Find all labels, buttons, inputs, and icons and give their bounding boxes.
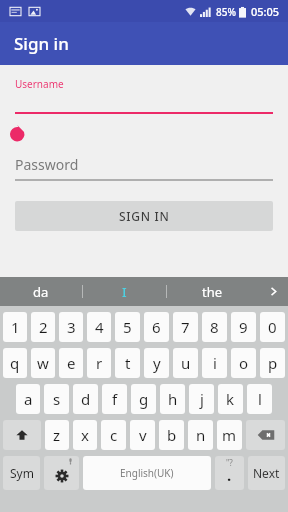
staticText: v [139,425,147,445]
button[interactable]: n [188,420,213,450]
button[interactable]: d [73,384,98,414]
staticText: 9 [239,317,248,337]
button[interactable]: Username [15,77,273,125]
staticText: 5 [123,317,132,337]
staticText: 6 [152,317,161,337]
staticText: r [96,353,103,373]
staticText: 05:05 [251,4,280,19]
button[interactable]: More suggestions [258,277,288,306]
button[interactable]: da [0,277,82,306]
button[interactable]: y [144,348,169,378]
button[interactable]: SIGN IN [15,201,273,231]
button[interactable]: c [101,420,126,450]
button[interactable]: Shift [3,420,41,450]
button[interactable]: v [130,420,155,450]
button[interactable]: a [16,384,40,414]
button[interactable]: Sym [3,456,40,490]
staticText: q [10,353,20,373]
button[interactable]: t [115,348,140,378]
staticText: f [112,389,118,409]
staticText: j [200,389,204,409]
button[interactable]: b [159,420,184,450]
button[interactable]: q [3,348,27,378]
staticText: k [226,389,235,409]
button[interactable]: h [160,384,185,414]
staticText: 8 [210,317,219,337]
staticText: n [196,425,206,445]
staticText: x [81,425,89,445]
button[interactable]: z [45,420,69,450]
button[interactable]: Password [15,147,273,181]
staticText: Username [15,77,64,91]
staticText: 4 [95,317,104,337]
staticText: i [213,353,217,373]
staticText: SIGN IN [119,208,170,224]
button[interactable]: s [44,384,69,414]
staticText: e [67,353,76,373]
staticText: Sym [10,465,34,481]
staticText: 7 [181,317,190,337]
staticText: Next [253,465,280,481]
staticText: I [122,283,127,301]
staticText: u [181,353,191,373]
button[interactable]: e [59,348,83,378]
button[interactable]: I [83,277,166,306]
button[interactable]: Period [215,456,244,490]
button[interactable]: 0 [260,312,285,342]
staticText: Password [15,155,79,174]
staticText: g [139,389,149,409]
button[interactable]: 3 [59,312,83,342]
button[interactable]: g [131,384,156,414]
button[interactable]: o [231,348,256,378]
staticText: s [53,389,61,409]
staticText: 85% [216,5,236,19]
staticText: h [168,389,178,409]
button[interactable]: 2 [31,312,55,342]
staticText: m [222,425,237,445]
staticText: 0 [268,317,277,337]
button[interactable]: x [73,420,97,450]
button[interactable]: Backspace [246,420,285,450]
button[interactable]: 5 [115,312,140,342]
button[interactable]: English(UK) [83,456,211,490]
staticText: p [268,353,278,373]
button[interactable]: l [247,384,272,414]
button[interactable]: 1 [3,312,27,342]
staticText: z [53,425,61,445]
staticText: o [239,353,249,373]
button[interactable]: 4 [87,312,111,342]
button[interactable]: Next [248,456,285,490]
button[interactable]: i [202,348,227,378]
staticText: l [258,389,262,409]
staticText: 1 [11,317,20,337]
staticText: . [227,465,232,485]
staticText: da [33,283,49,301]
button[interactable]: p [260,348,285,378]
button[interactable]: 9 [231,312,256,342]
staticText: 2 [39,317,48,337]
button[interactable]: 6 [144,312,169,342]
button[interactable]: m [217,420,242,450]
button[interactable]: Settings [44,456,79,490]
staticText: w [37,353,49,373]
staticText: b [167,425,177,445]
button[interactable]: r [87,348,111,378]
staticText: English(UK) [120,466,174,480]
button[interactable]: 7 [173,312,198,342]
staticText: "? [226,457,233,468]
button[interactable]: u [173,348,198,378]
button[interactable]: the [167,277,258,306]
button[interactable]: 8 [202,312,227,342]
staticText: d [81,389,91,409]
staticText: Sign in [14,32,69,55]
staticText: y [153,353,161,373]
staticText: 3 [67,317,76,337]
staticText: a [24,389,33,409]
staticText: t [125,353,131,373]
button[interactable]: k [218,384,243,414]
button[interactable]: j [189,384,214,414]
button[interactable]: f [102,384,127,414]
staticText: c [110,425,118,445]
staticText: the [202,283,223,301]
button[interactable]: w [31,348,55,378]
